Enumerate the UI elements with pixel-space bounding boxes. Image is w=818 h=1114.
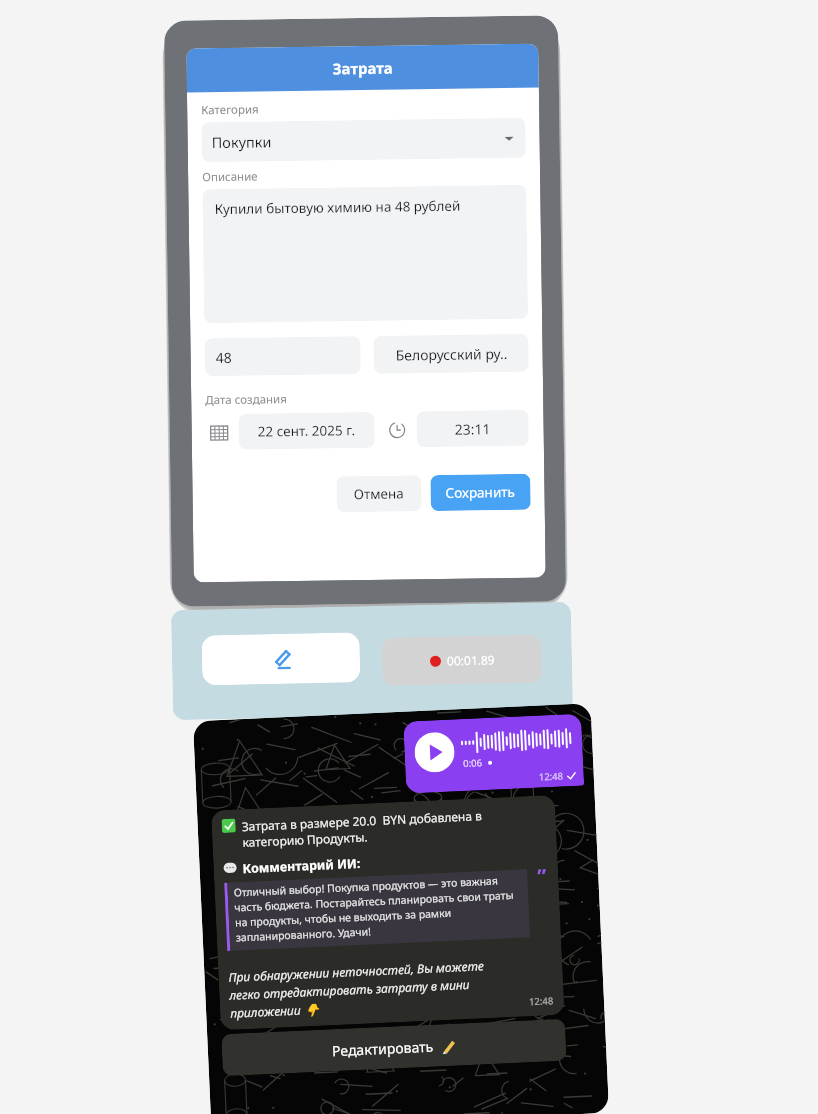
staticText: Отмена <box>353 484 405 503</box>
button[interactable]: 23:11 <box>416 410 529 447</box>
staticText: 22 сент. 2025 г. <box>257 421 356 440</box>
button[interactable]: Голосовое сообщение <box>403 714 584 794</box>
staticText: 12:48 <box>529 994 554 1008</box>
staticText: Редактировать <box>332 1037 434 1060</box>
button[interactable]: Белорусский ру.. <box>373 334 529 374</box>
button[interactable]: Редактировать <box>201 632 360 686</box>
button[interactable]: Редактировать <box>221 1019 567 1076</box>
button[interactable]: Отмена <box>336 475 422 512</box>
button[interactable]: Выбрать время <box>384 417 409 442</box>
staticText: ” <box>537 862 547 890</box>
staticText: Белорусский ру.. <box>395 344 508 365</box>
staticText: Затрата в размере 20.0 BYN добавлена в к… <box>241 804 546 850</box>
button[interactable]: Сохранить <box>430 474 531 511</box>
staticText: 12:48 <box>538 769 564 784</box>
staticText: Описание <box>202 168 258 185</box>
button[interactable]: Купили бытовую химию на 48 рублей <box>202 185 528 323</box>
staticText: Категория <box>201 101 259 118</box>
button[interactable]: 00:01.89 <box>381 634 542 686</box>
staticText: Покупки <box>211 131 272 152</box>
button[interactable]: Выбрать дату <box>205 419 232 445</box>
button[interactable]: Покупки <box>201 118 526 162</box>
staticText: Комментарий ИИ: <box>242 855 361 877</box>
staticText: Купили бытовую химию на 48 рублей <box>214 197 461 218</box>
staticText: Сохранить <box>445 483 516 502</box>
staticText: Отличный выбор! Покупка продуктов — это … <box>233 872 526 944</box>
staticText: Затрата <box>332 58 394 78</box>
staticText: 00:01.89 <box>447 651 495 668</box>
staticText: Дата создания <box>205 391 287 408</box>
button[interactable]: 22 сент. 2025 г. <box>238 412 375 450</box>
staticText: 23:11 <box>454 419 491 439</box>
staticText: 48 <box>215 348 233 367</box>
staticText: При обнаружении неточностей, Вы можете л… <box>228 956 510 1022</box>
button[interactable]: 48 <box>204 336 361 376</box>
staticText: 0:06 <box>463 756 482 770</box>
